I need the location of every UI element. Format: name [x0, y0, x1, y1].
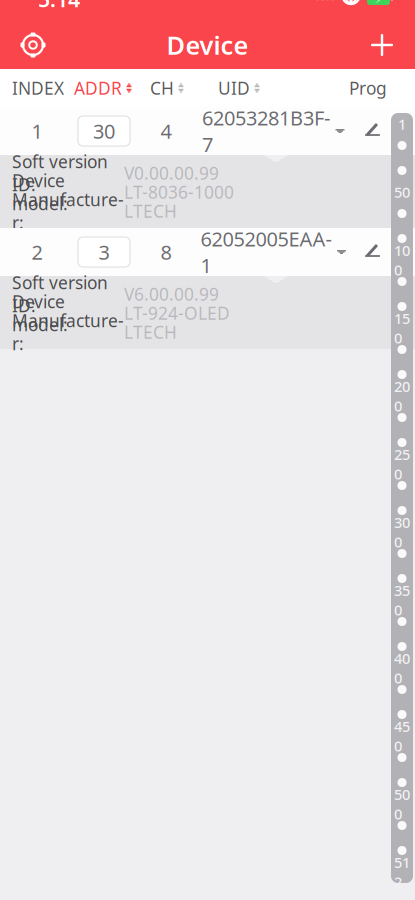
staticText: 4: [160, 118, 171, 144]
staticText: 8: [160, 239, 171, 265]
button[interactable]: UID: [218, 66, 314, 109]
staticText: 3: [98, 239, 109, 265]
button[interactable]: 2: [0, 228, 415, 276]
staticText: 2: [31, 239, 42, 265]
staticText: 62053281B3F7: [202, 104, 330, 157]
staticText: Device model:: [12, 290, 68, 336]
staticText: 450: [394, 716, 410, 755]
staticText: 5:14: [38, 0, 80, 13]
staticText: LTECH: [124, 199, 177, 222]
staticText: INDEX: [12, 76, 64, 99]
staticText: 50: [394, 182, 410, 202]
staticText: ADDR: [74, 76, 122, 99]
staticText: 350: [394, 580, 410, 619]
staticText: 500: [394, 784, 410, 823]
button[interactable]: Address index scrubber: [391, 113, 413, 883]
staticText: Prog: [349, 76, 387, 99]
staticText: 62052005EAA1: [200, 225, 331, 278]
staticText: Soft version ID:: [12, 271, 108, 317]
staticText: Device: [166, 28, 248, 62]
staticText: Device model:: [12, 169, 68, 215]
button[interactable]: Add device: [359, 23, 405, 67]
staticText: 100: [394, 240, 410, 279]
staticText: 400: [394, 648, 410, 687]
button[interactable]: ADDR: [74, 66, 150, 109]
staticText: Soft version ID:: [12, 150, 108, 196]
button[interactable]: INDEX: [12, 66, 74, 109]
staticText: LT-924-OLED: [124, 301, 230, 324]
staticText: V0.00.00.99: [124, 161, 219, 184]
staticText: 250: [394, 444, 410, 483]
staticText: 300: [394, 512, 410, 551]
staticText: Manufacturer:: [12, 188, 124, 234]
staticText: 200: [394, 376, 410, 415]
staticText: 30: [93, 118, 115, 144]
staticText: UID: [218, 76, 250, 99]
staticText: 512: [394, 852, 410, 891]
staticText: V6.00.00.99: [124, 282, 219, 305]
staticText: 150: [394, 308, 410, 347]
staticText: CH: [150, 76, 174, 99]
staticText: Manufacturer:: [12, 309, 124, 355]
staticText: LTECH: [124, 320, 177, 343]
staticText: 1: [398, 114, 406, 134]
staticText: ⚡︎: [374, 0, 382, 6]
button[interactable]: 1: [0, 107, 415, 155]
staticText: LT-8036-1000: [124, 180, 234, 203]
button[interactable]: Prog: [349, 66, 387, 109]
button[interactable]: CH: [150, 66, 218, 109]
staticText: 1: [31, 118, 42, 144]
button[interactable]: Settings: [10, 23, 56, 67]
